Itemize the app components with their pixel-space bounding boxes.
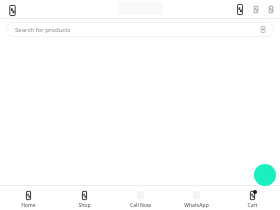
button[interactable]: Call Now: [112, 186, 168, 209]
button[interactable]: Menu: [5, 3, 19, 17]
staticText: Call Now: [130, 202, 151, 209]
other: Search by image: [258, 25, 267, 34]
button[interactable]: Chat support: [254, 164, 276, 186]
staticText: WhatsApp: [184, 202, 209, 209]
button[interactable]: Search for products: [6, 22, 274, 37]
staticText: Shop: [78, 202, 91, 209]
button[interactable]: Account: [233, 3, 246, 16]
staticText: Home: [21, 202, 36, 209]
staticText: Cart: [247, 202, 258, 209]
button[interactable]: Wishlist: [250, 4, 261, 15]
button[interactable]: Home: [0, 186, 56, 209]
button[interactable]: WhatsApp: [168, 186, 224, 209]
button[interactable]: Notifications: [265, 4, 276, 15]
staticText: Search for products: [15, 26, 71, 34]
button[interactable]: Shop: [56, 186, 112, 209]
button[interactable]: Cart: [224, 186, 280, 209]
